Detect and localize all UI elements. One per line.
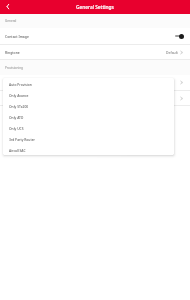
staticText: Provision Mode bbox=[5, 80, 31, 85]
staticText: Only Avance bbox=[9, 93, 29, 97]
staticText: Contact Image bbox=[5, 34, 29, 39]
staticText: Default bbox=[166, 50, 178, 55]
button[interactable]: Ringtone bbox=[0, 45, 190, 59]
button[interactable]: Auto Provision bbox=[3, 78, 174, 89]
button[interactable]: Provision Server bbox=[0, 91, 190, 105]
button[interactable]: Contact Image bbox=[0, 28, 190, 44]
button[interactable]: Only STx200 bbox=[3, 100, 174, 111]
button[interactable]: Only Avance bbox=[3, 89, 174, 100]
button[interactable]: Aircall SAC bbox=[3, 144, 174, 155]
button[interactable]: Provision Mode bbox=[0, 75, 190, 90]
staticText: Ringtone bbox=[5, 50, 20, 55]
staticText: Aircall SAC bbox=[9, 148, 26, 152]
staticText: Provision Server bbox=[5, 96, 32, 101]
button[interactable]: Back bbox=[0, 0, 14, 14]
button[interactable]: Contact Image toggle bbox=[175, 33, 184, 39]
staticText: Auto Provision bbox=[9, 82, 32, 86]
staticText: General Settings bbox=[76, 4, 114, 11]
button[interactable]: 3rd Party Router bbox=[3, 133, 174, 144]
staticText: Only ATO bbox=[9, 115, 24, 119]
button[interactable]: Only UCS bbox=[3, 122, 174, 133]
staticText: Only UCS bbox=[9, 126, 24, 130]
staticText: Only STx200 bbox=[9, 104, 29, 108]
button[interactable]: Only ATO bbox=[3, 111, 174, 122]
staticText: 3rd Party Router bbox=[9, 137, 35, 141]
staticText: General bbox=[5, 19, 17, 23]
staticText: Provisioning bbox=[5, 66, 23, 70]
